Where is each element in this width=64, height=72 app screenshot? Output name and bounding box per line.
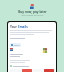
staticText: Buy now, pay later [18,10,47,14]
button[interactable]: Klarna [10,43,21,47]
staticText: Your [10,25,18,29]
staticText: with flexible payments [21,14,44,17]
staticText: Klarna [14,44,20,46]
staticText: Emails [18,25,28,29]
other: Logo [30,4,34,9]
